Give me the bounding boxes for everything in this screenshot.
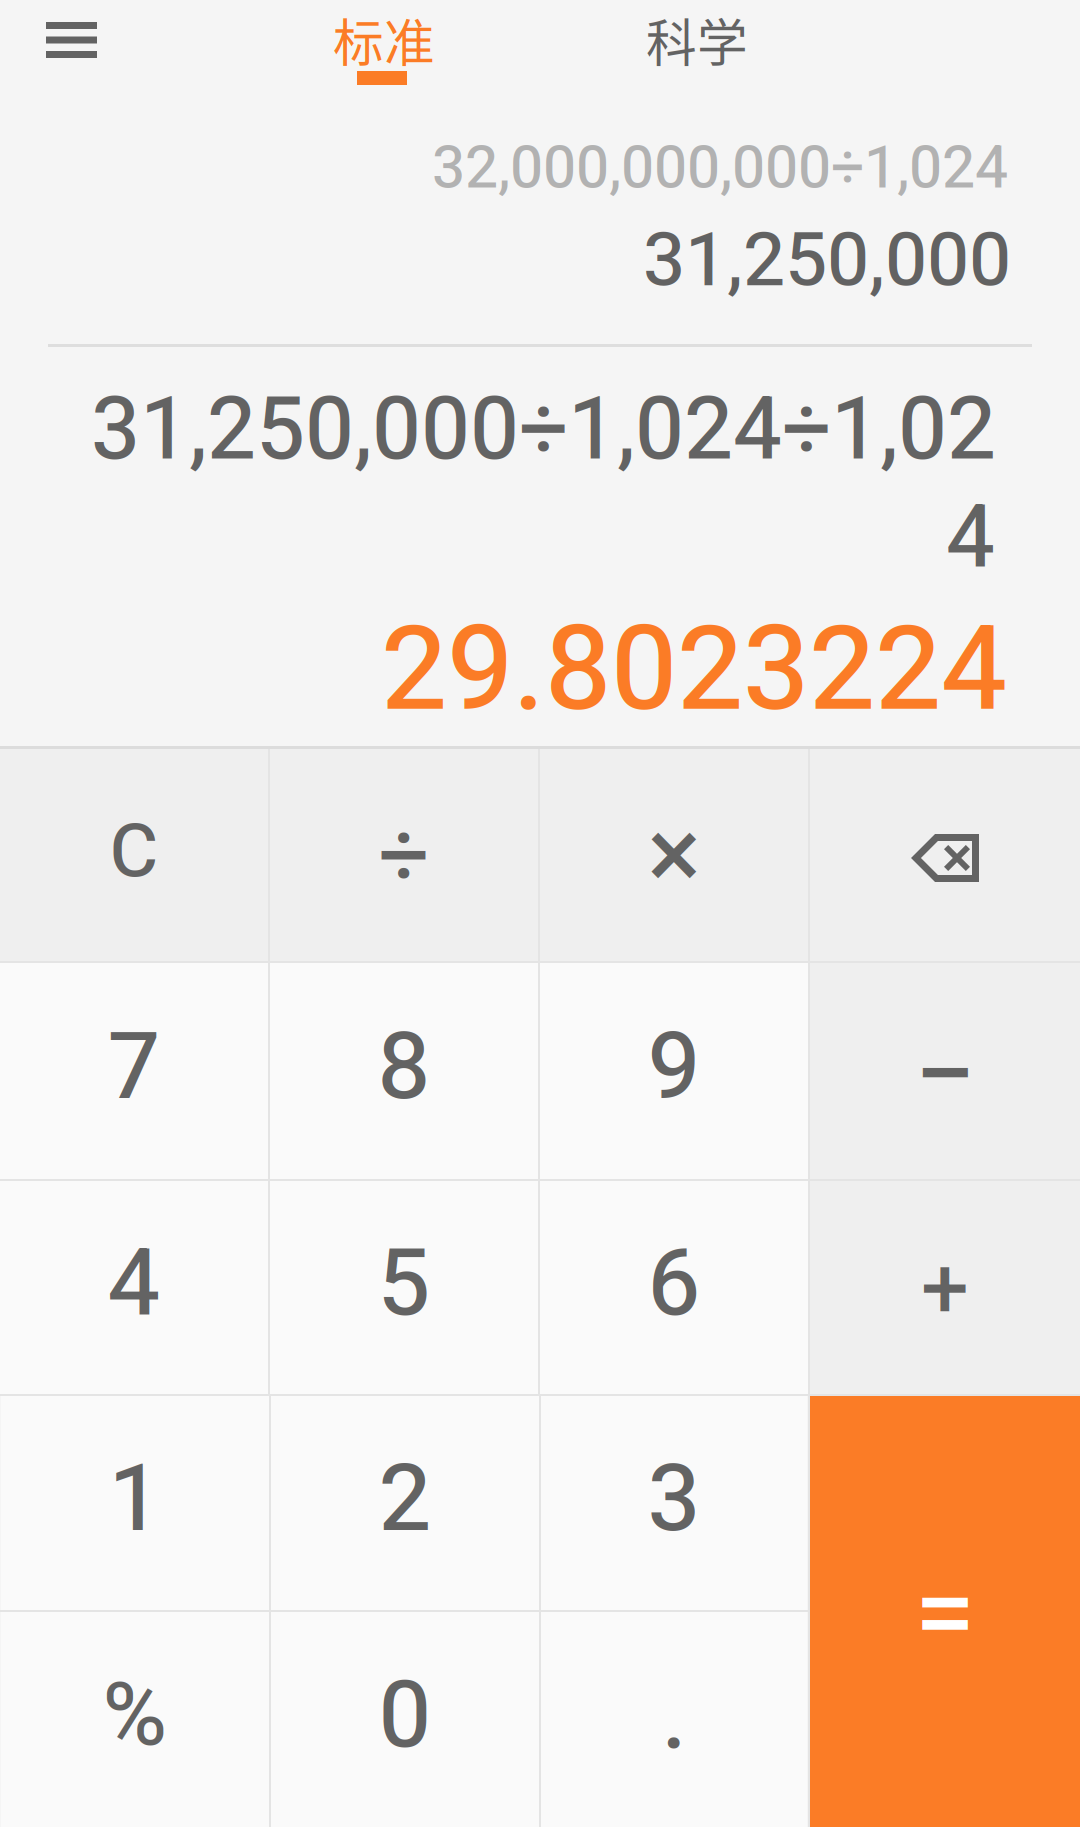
button[interactable]: Backspace <box>810 749 1080 961</box>
button[interactable]: 2 <box>271 1396 539 1610</box>
staticText: 0 <box>378 1660 431 1769</box>
button[interactable]: × <box>540 749 808 961</box>
button[interactable]: 7 <box>0 963 268 1179</box>
button[interactable]: C <box>0 749 268 961</box>
button[interactable]: ÷ <box>270 749 538 961</box>
staticText: . <box>661 1661 686 1770</box>
staticText: 4 <box>946 486 995 588</box>
staticText: 4 <box>107 1228 160 1337</box>
staticText: 9 <box>647 1011 700 1121</box>
button[interactable]: − <box>810 963 1080 1179</box>
staticText: 标准 <box>333 3 435 76</box>
button[interactable]: 科学 <box>615 0 775 112</box>
button[interactable]: = <box>810 1396 1080 1827</box>
staticText: % <box>102 1663 167 1766</box>
button[interactable]: + <box>810 1181 1080 1394</box>
staticText: 6 <box>647 1228 700 1337</box>
button[interactable]: 0 <box>271 1612 539 1827</box>
staticText: 科学 <box>646 3 748 76</box>
staticText: 2 <box>378 1443 431 1553</box>
staticText: 31,250,000 <box>643 216 1011 303</box>
staticText: 29.8023224 <box>381 600 1007 737</box>
staticText: 31,250,000÷1,024÷1,02 <box>91 378 996 480</box>
button[interactable]: . <box>541 1612 807 1827</box>
staticText: × <box>647 795 700 913</box>
staticText: 5 <box>377 1228 430 1337</box>
staticText: 7 <box>107 1011 160 1121</box>
staticText: 8 <box>377 1011 430 1121</box>
button[interactable]: % <box>1 1612 269 1827</box>
button[interactable]: 标准 <box>302 0 462 112</box>
button[interactable]: 5 <box>270 1181 538 1394</box>
staticText: C <box>109 807 158 895</box>
button[interactable]: 4 <box>0 1181 268 1394</box>
button[interactable]: 8 <box>270 963 538 1179</box>
staticText: 32,000,000,000÷1,024 <box>432 133 1008 202</box>
staticText: + <box>921 1238 969 1338</box>
button[interactable]: 9 <box>540 963 808 1179</box>
button[interactable]: 6 <box>540 1181 808 1394</box>
staticText: = <box>914 1548 975 1676</box>
staticText: ÷ <box>378 803 429 907</box>
button[interactable]: Menu <box>0 0 142 112</box>
button[interactable]: 3 <box>541 1396 807 1610</box>
staticText: 3 <box>647 1443 700 1553</box>
staticText: 1 <box>108 1443 161 1553</box>
button[interactable]: 1 <box>1 1396 269 1610</box>
staticText: − <box>914 1010 976 1138</box>
